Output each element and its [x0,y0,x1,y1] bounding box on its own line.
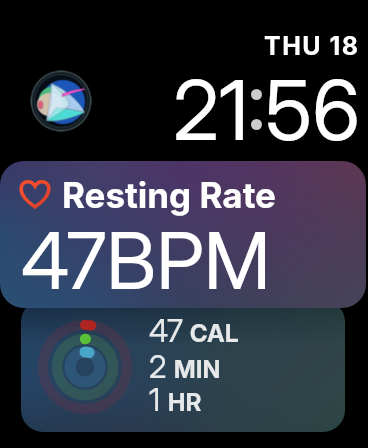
staticText: HR [168,388,202,417]
staticText: 47 [149,312,183,350]
button[interactable]: Assistant [30,70,92,132]
staticText: CAL [190,319,239,348]
staticText: 1 [149,381,161,419]
staticText: 2 [149,348,167,386]
button[interactable]: Resting Rate [0,161,366,308]
staticText: 21 [173,61,249,160]
staticText: MIN [174,355,221,384]
staticText: THU 18 [264,31,360,61]
staticText: 56 [265,61,361,160]
button[interactable]: 47 [21,300,345,432]
staticText: 47BPM [21,213,271,307]
staticText: Resting Rate [62,174,276,216]
